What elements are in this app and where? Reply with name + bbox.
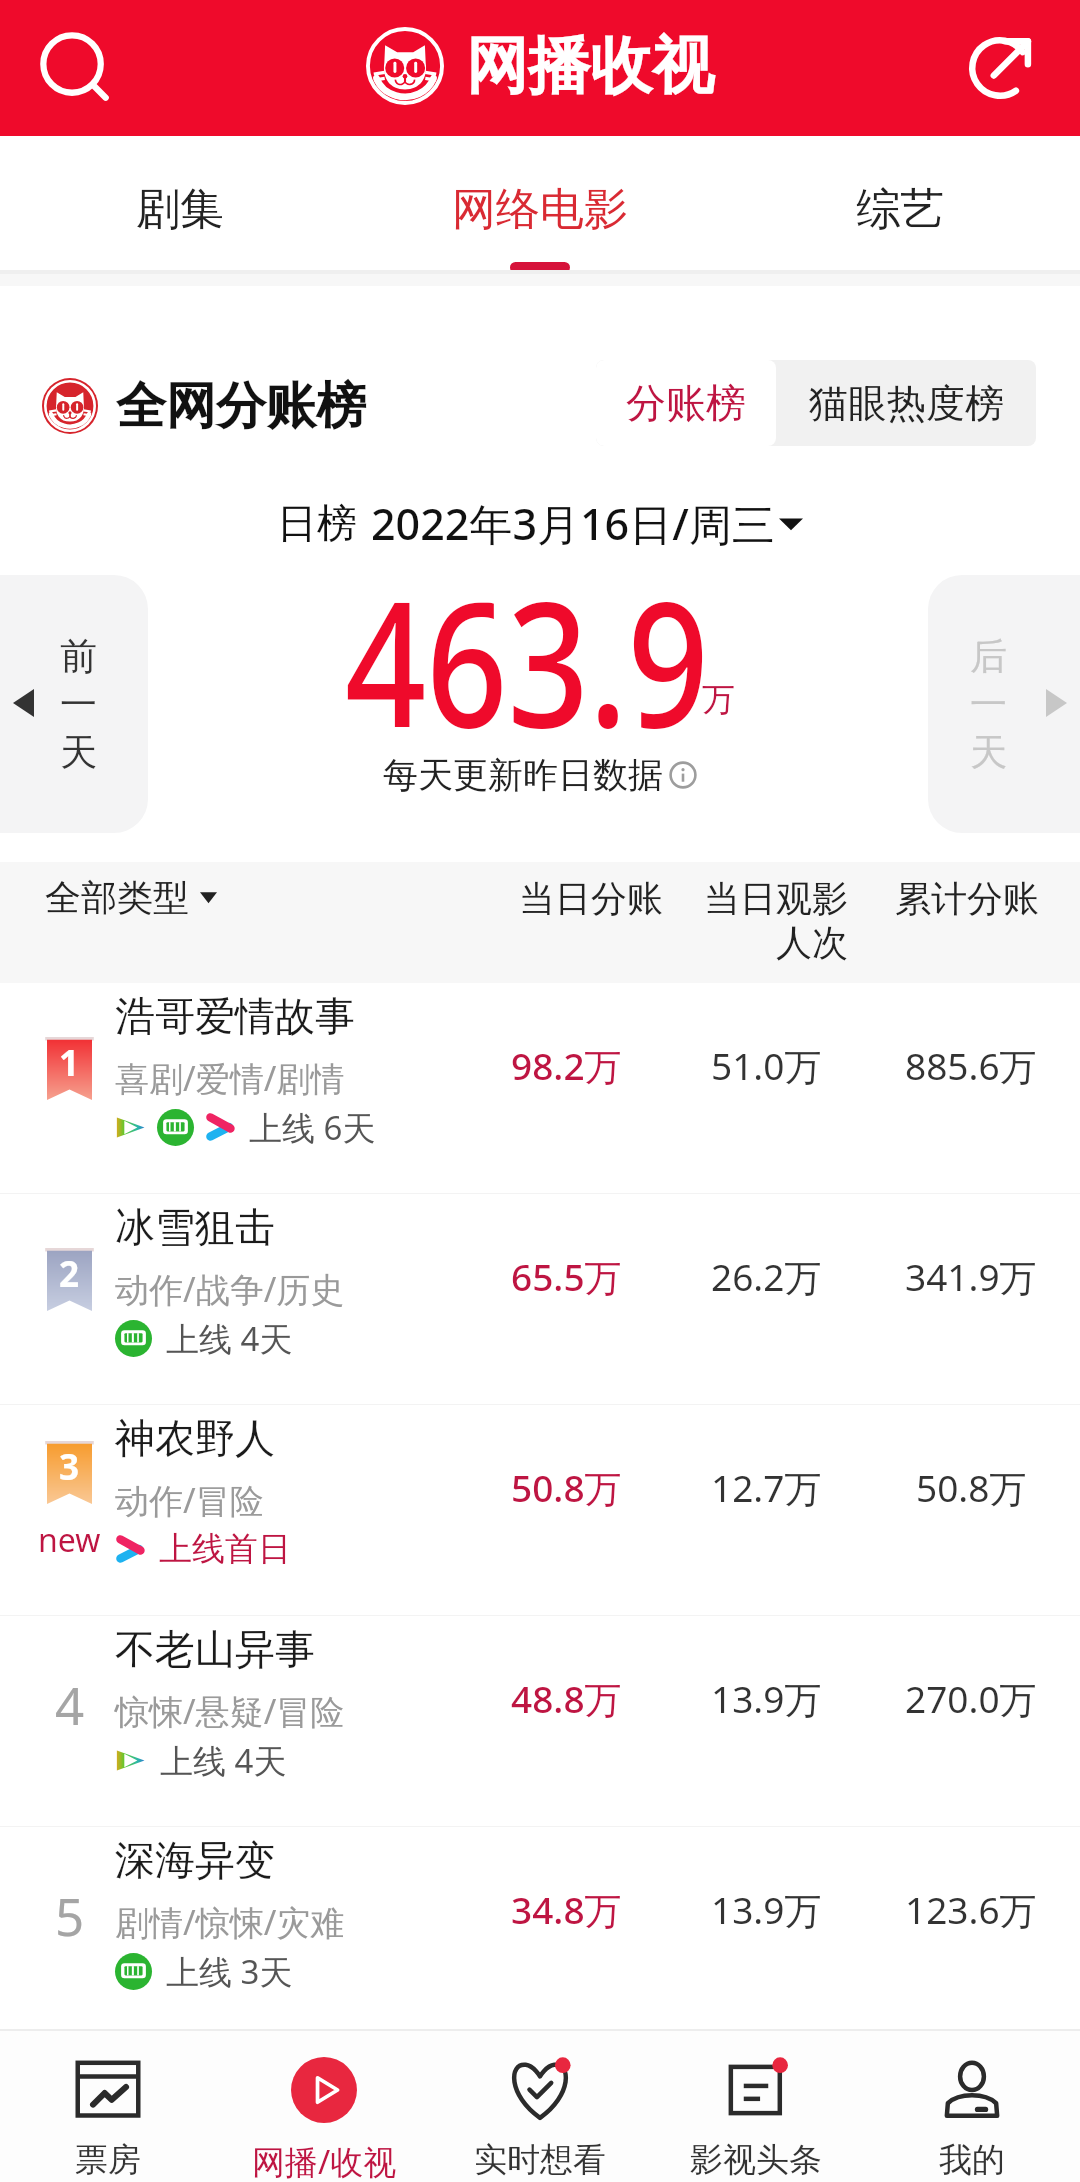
staticText: 341.9万 [905,1251,1037,1302]
staticText: 累计分账 [895,876,1039,921]
button[interactable]: 实时想看 [432,2031,648,2182]
staticText: 浩哥爱情故事 [115,991,355,1041]
staticText: 分账榜 [626,378,746,428]
staticText: 剧情/惊悚/灾难 [115,1899,345,1945]
staticText: 13.9万 [711,1673,822,1724]
staticText: 463.9 [345,543,709,777]
button[interactable]: 综艺 [720,136,1080,274]
staticText: 1 [59,1039,80,1087]
staticText: 26.2万 [711,1251,822,1302]
staticText: 不老山异事 [115,1624,315,1674]
staticText: 65.5万 [511,1251,622,1302]
staticText: 实时想看 [474,2139,606,2181]
button[interactable]: Search [28,20,124,116]
button[interactable]: 剧集 [0,136,360,274]
staticText: 网络电影 [452,182,628,237]
staticText: 50.8万 [916,1462,1027,1513]
staticText: 上线 3天 [166,1949,293,1993]
staticText: 日榜 [277,498,357,548]
staticText: 冰雪狙击 [115,1202,275,1252]
staticText: 3 [59,1443,80,1491]
staticText: 网播/收视 [252,2139,397,2182]
staticText: 剧集 [136,182,224,237]
button[interactable]: 3 [0,1405,1080,1616]
staticText: 51.0万 [711,1040,822,1091]
staticText: 上线 4天 [160,1738,287,1782]
button[interactable]: 票房 [0,2031,216,2182]
staticText: 上线 4天 [166,1316,293,1360]
staticText: 上线 6天 [249,1105,376,1149]
staticText: 深海异变 [115,1835,275,1885]
staticText: 动作/冒险 [115,1477,264,1523]
staticText: 98.2万 [511,1040,622,1091]
staticText: 34.8万 [511,1884,622,1935]
staticText: 48.8万 [511,1673,622,1724]
staticText: 270.0万 [905,1673,1037,1724]
button[interactable]: 分账榜 [596,360,776,446]
staticText: 5 [55,1881,85,1944]
staticText: 神农野人 [115,1413,275,1463]
button[interactable]: 网播/收视 [216,2031,432,2182]
button[interactable]: 影视头条 [648,2031,864,2182]
button[interactable]: 5 [0,1827,1080,2038]
staticText: 2022年3月16日/周三 [371,494,775,553]
staticText: 票房 [75,2139,141,2181]
staticText: 惊悚/悬疑/冒险 [115,1688,345,1734]
button[interactable]: Share [952,20,1048,116]
button[interactable]: 2 [0,1194,1080,1405]
staticText: new [38,1518,101,1562]
staticText: 猫眼热度榜 [809,379,1004,428]
staticText: 动作/战争/历史 [115,1266,345,1312]
button[interactable]: 4 [0,1616,1080,1827]
staticText: 后 一 天 [970,633,1007,776]
staticText: 综艺 [856,182,944,237]
staticText: 12.7万 [711,1462,822,1513]
staticText: 50.8万 [511,1462,622,1513]
staticText: 前 一 天 [60,633,97,776]
staticText: 全网分账榜 [116,375,366,438]
staticText: 喜剧/爱情/剧情 [115,1055,345,1101]
staticText: 万 [702,679,735,721]
button[interactable]: 猫眼热度榜 [776,360,1036,446]
staticText: 4 [55,1670,85,1733]
staticText: 2 [59,1250,80,1298]
button[interactable]: 后 一 天 [928,575,1080,833]
staticText: 当日观影 人次 [704,876,848,966]
staticText: 当日分账 [519,876,663,921]
button[interactable]: 1 [0,983,1080,1194]
button[interactable]: 全部类型 [45,875,217,920]
button[interactable]: 我的 [864,2031,1080,2182]
staticText: 13.9万 [711,1884,822,1935]
staticText: 影视头条 [690,2139,822,2181]
staticText: 每天更新昨日数据 [383,753,663,797]
staticText: 网播收视 [466,27,714,105]
staticText: 我的 [939,2139,1005,2181]
staticText: 上线首日 [159,1528,291,1570]
button[interactable]: 网络电影 [360,136,720,274]
staticText: 123.6万 [905,1884,1037,1935]
button[interactable]: 2022年3月16日/周三 [371,494,803,553]
staticText: 全部类型 [45,875,189,920]
button[interactable]: 前 一 天 [0,575,148,833]
staticText: 885.6万 [905,1040,1037,1091]
